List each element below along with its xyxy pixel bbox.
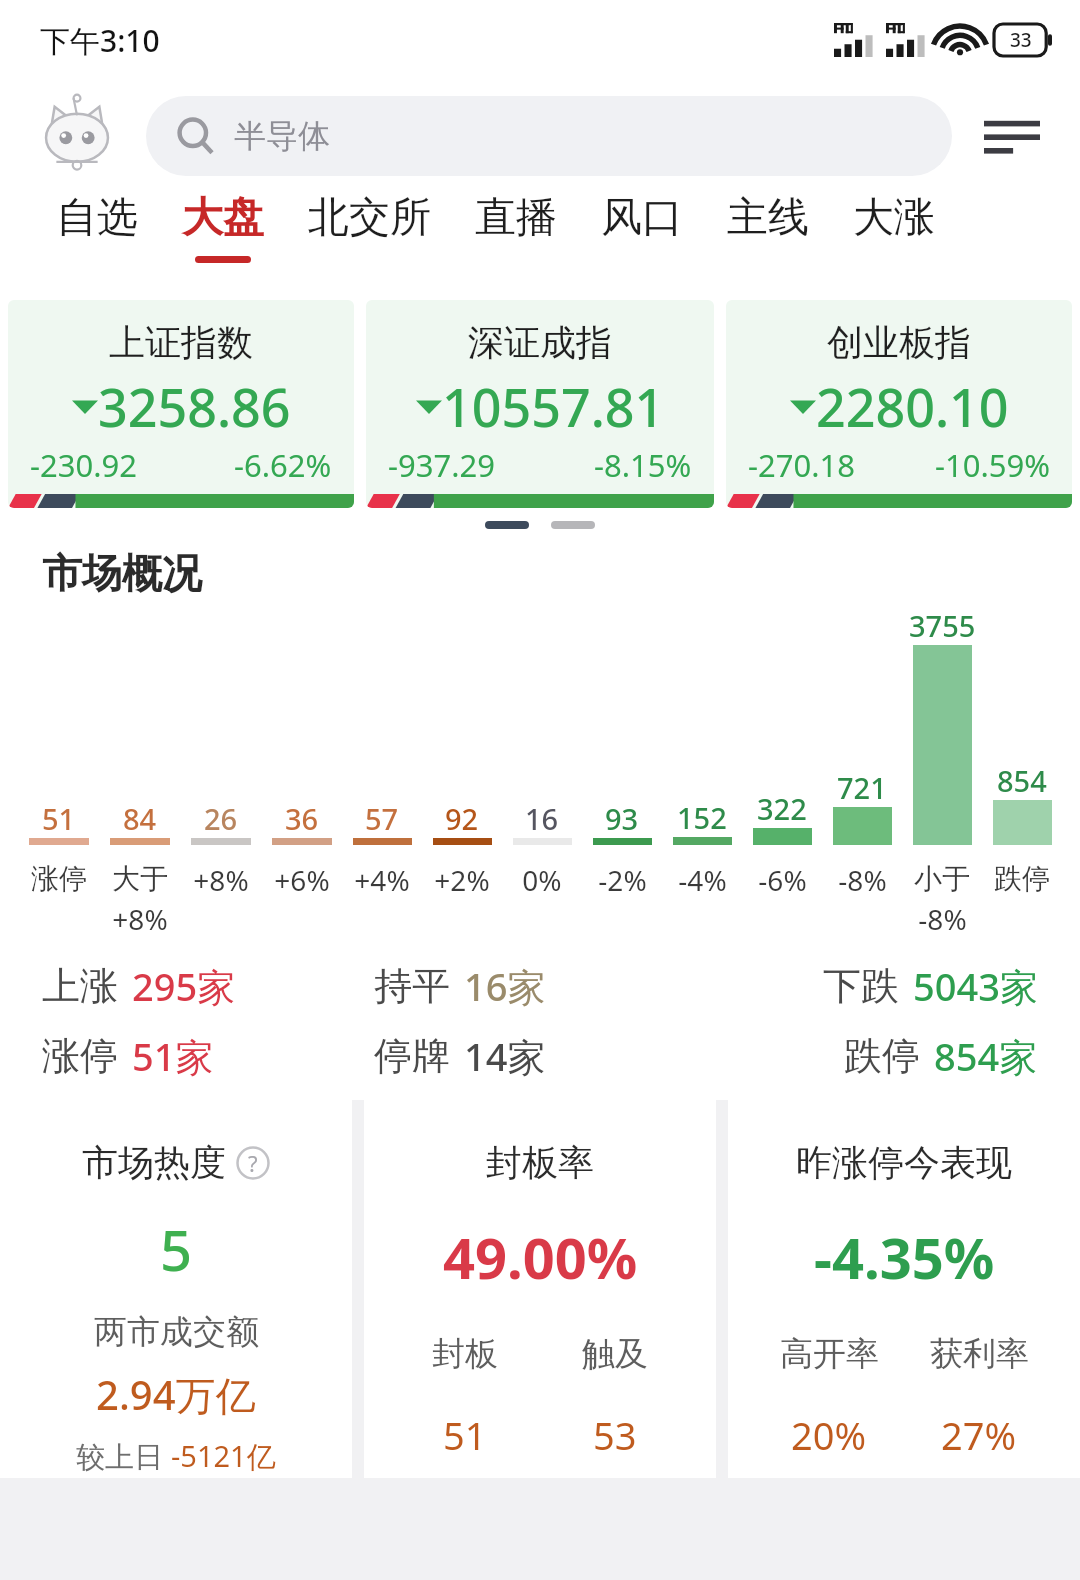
staticText: 51 [42,799,76,838]
staticText: 854 [997,761,1047,800]
staticText: 上涨 [42,962,118,1010]
button[interactable]: 大盘 [160,192,286,263]
staticText: 停牌 [374,1032,450,1080]
staticText: 创业板指 [827,320,971,365]
staticText: -5121亿 [171,1436,276,1476]
staticText: ? [248,1148,258,1178]
staticText: 36 [285,799,319,838]
staticText: -6% [758,861,807,899]
staticText: 封板率 [486,1140,594,1185]
staticText: 33 [1010,27,1032,53]
staticText: 大盘 [182,192,264,244]
button[interactable]: 深证成指 [366,300,714,508]
staticText: -10.59% [935,444,1050,486]
staticText: 93 [605,799,639,838]
staticText: 322 [757,789,807,828]
staticText: -4.35% [814,1219,995,1295]
staticText: 封板 [432,1333,498,1375]
staticText: -270.18 [748,444,855,486]
staticText: 3258.86 [98,371,291,442]
staticText: 下跌 [823,962,899,1010]
staticText: 16家 [464,960,546,1012]
staticText: -230.92 [30,444,137,486]
staticText: -6.62% [234,444,332,486]
staticText: 854家 [934,1030,1038,1082]
staticText: 持平 [374,962,450,1010]
staticText: 涨停 [42,1032,118,1080]
staticText: 152 [677,798,727,837]
staticText: +4% [354,861,410,899]
staticText: -4% [678,861,727,899]
staticText: 高开率 [780,1333,879,1375]
staticText: 触及 [582,1333,648,1375]
staticText: 3755 [909,606,976,645]
staticText: 小于 [914,861,970,896]
staticText: 92 [445,799,479,838]
staticText: 两市成交额 [94,1311,259,1353]
staticText: 大涨 [853,192,935,244]
staticText: 主线 [727,192,809,244]
staticText: 市场概况 [42,548,202,598]
staticText: 0% [522,861,562,899]
staticText: 51家 [132,1030,214,1082]
staticText: 2.94万亿 [96,1367,256,1422]
staticText: +6% [274,861,330,899]
button[interactable]: 上证指数 [8,300,354,508]
button[interactable]: Menu [974,98,1050,174]
staticText: 下午3:10 [40,20,160,61]
staticText: 5 [160,1211,193,1287]
button[interactable]: 北交所 [286,192,453,256]
staticText: 295家 [132,960,236,1012]
staticText: 半导体 [234,116,330,156]
staticText: 跌停 [994,861,1050,896]
staticText: 2280.10 [816,371,1009,442]
staticText: 市场热度 [82,1140,226,1185]
staticText: 较上日 [76,1436,171,1476]
staticText: -2% [598,861,647,899]
staticText: -8% [918,900,967,938]
button[interactable]: 昨涨停今表现 [728,1100,1080,1478]
staticText: 57 [365,799,399,838]
staticText: 涨停 [31,861,87,896]
button[interactable]: 封板率 [364,1100,716,1478]
button[interactable]: 自选 [34,192,160,256]
staticText: 51 [443,1409,487,1461]
staticText: +8% [112,900,168,938]
staticText: 84 [123,799,157,838]
staticText: 获利率 [930,1333,1029,1375]
button[interactable]: 主线 [705,192,831,256]
staticText: 大于 [112,861,168,896]
staticText: 直播 [475,192,557,244]
staticText: -8% [838,861,887,899]
staticText: 49.00% [443,1219,638,1295]
staticText: +8% [193,861,249,899]
staticText: 27% [941,1409,1017,1461]
staticText: 跌停 [844,1032,920,1080]
other: Info [236,1146,270,1180]
button[interactable]: 市场热度 [0,1100,352,1478]
button[interactable]: Profile avatar [30,89,124,183]
staticText: 5043家 [913,960,1038,1012]
staticText: 20% [791,1409,867,1461]
staticText: 北交所 [308,192,431,244]
staticText: 16 [525,799,559,838]
staticText: -8.15% [594,444,692,486]
staticText: 10557.81 [442,371,665,442]
staticText: 昨涨停今表现 [796,1140,1012,1185]
button[interactable]: 大涨 [831,192,957,256]
staticText: 上证指数 [109,320,253,365]
button[interactable]: 风口 [579,192,705,256]
staticText: +2% [434,861,490,899]
staticText: 26 [204,799,238,838]
staticText: 自选 [56,192,138,244]
staticText: 深证成指 [468,320,612,365]
staticText: 53 [593,1409,637,1461]
button[interactable]: 半导体 [146,96,952,176]
staticText: -937.29 [388,444,495,486]
staticText: 721 [837,768,887,807]
button[interactable]: 创业板指 [726,300,1072,508]
staticText: 14家 [464,1030,546,1082]
button[interactable]: 直播 [453,192,579,256]
staticText: 风口 [601,192,683,244]
